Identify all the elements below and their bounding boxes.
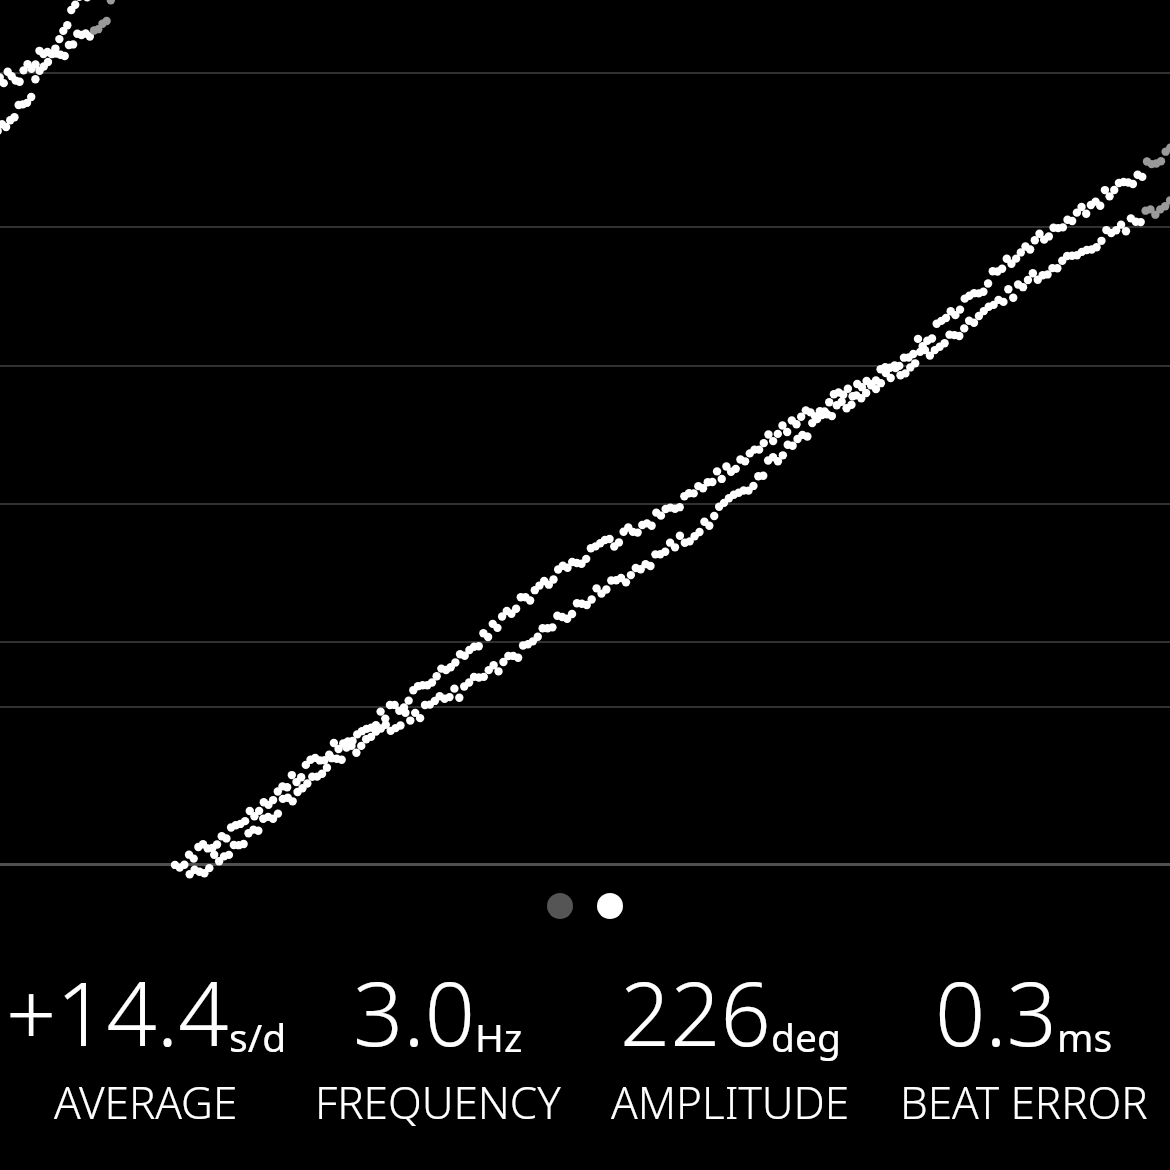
- staticText: s/d: [229, 1010, 287, 1063]
- staticText: AVERAGE: [54, 1072, 238, 1132]
- staticText: deg: [771, 1010, 841, 1063]
- button[interactable]: +14.4: [0, 946, 292, 1132]
- button[interactable]: 0.3: [877, 946, 1170, 1132]
- staticText: +14.4: [6, 952, 229, 1072]
- button[interactable]: 3.0: [292, 946, 584, 1132]
- button[interactable]: Page 1: [547, 893, 573, 919]
- staticText: 226: [620, 952, 771, 1072]
- staticText: FREQUENCY: [315, 1072, 561, 1132]
- staticText: 3.0: [353, 952, 475, 1072]
- staticText: Hz: [475, 1010, 523, 1063]
- button[interactable]: Page 2, selected: [597, 893, 623, 919]
- staticText: AMPLITUDE: [611, 1072, 850, 1132]
- staticText: BEAT ERROR: [900, 1072, 1148, 1132]
- button[interactable]: Timing trace graph: [0, 0, 1170, 866]
- button[interactable]: 226: [584, 946, 877, 1132]
- staticText: ms: [1057, 1010, 1113, 1063]
- staticText: 0.3: [935, 952, 1057, 1072]
